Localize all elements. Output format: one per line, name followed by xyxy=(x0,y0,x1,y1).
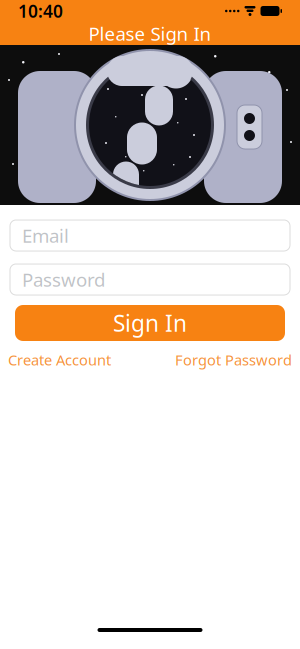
staticText: Email xyxy=(22,223,69,248)
staticText: Please Sign In xyxy=(88,21,211,46)
button[interactable]: Password xyxy=(10,264,290,295)
button[interactable]: Sign In xyxy=(15,305,285,341)
button[interactable]: Create Account xyxy=(8,347,111,372)
staticText: Password xyxy=(22,267,105,292)
staticText: Sign In xyxy=(113,308,187,338)
staticText: 10:40 xyxy=(18,0,63,22)
staticText: Create Account xyxy=(8,350,111,369)
button[interactable]: Email xyxy=(10,220,290,251)
staticText: Forgot Password xyxy=(175,350,292,369)
button[interactable]: Forgot Password xyxy=(175,347,292,372)
